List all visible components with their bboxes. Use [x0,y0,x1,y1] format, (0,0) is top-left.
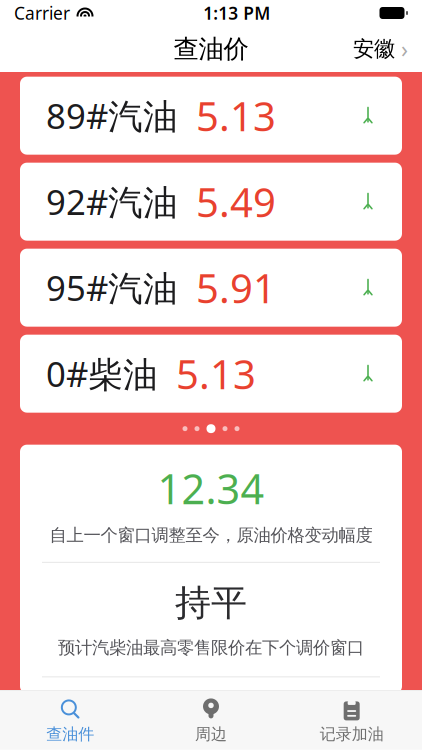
button[interactable]: 89#汽油 [20,77,402,155]
staticText: 安徽 [353,36,395,62]
button[interactable]: 92#汽油 [20,163,402,241]
staticText: 持平 [175,581,247,625]
staticText: 92#汽油 [46,179,178,225]
button[interactable]: 查油件 [0,691,141,750]
staticText: 12.34 [157,461,264,516]
staticText: 5.13 [176,347,256,400]
button[interactable]: 周边 [141,691,281,750]
staticText: Carrier [14,1,70,24]
staticText: 5.13 [196,89,276,142]
staticText: 95#汽油 [46,265,178,311]
staticText: 89#汽油 [46,93,178,139]
staticText: 自上一个窗口调整至今，原油价格变动幅度 [49,524,372,546]
staticText: 0#柴油 [46,351,158,397]
staticText: 查油价 [173,33,248,64]
staticText: 周边 [195,724,227,744]
button[interactable]: 95#汽油 [20,249,402,327]
staticText: 查油件 [46,724,94,744]
button[interactable]: 0#柴油 [20,335,402,413]
staticText: 记录加油 [320,724,384,744]
staticText: 5.49 [196,175,276,228]
staticText: 5.91 [196,261,276,314]
button[interactable]: 记录加油 [281,691,422,750]
staticText: 预计汽柴油最高零售限价在下个调价窗口 [58,637,364,658]
staticText: › [401,34,408,64]
staticText: 1:13 PM [203,1,270,24]
button[interactable]: 安徽 [339,23,422,75]
